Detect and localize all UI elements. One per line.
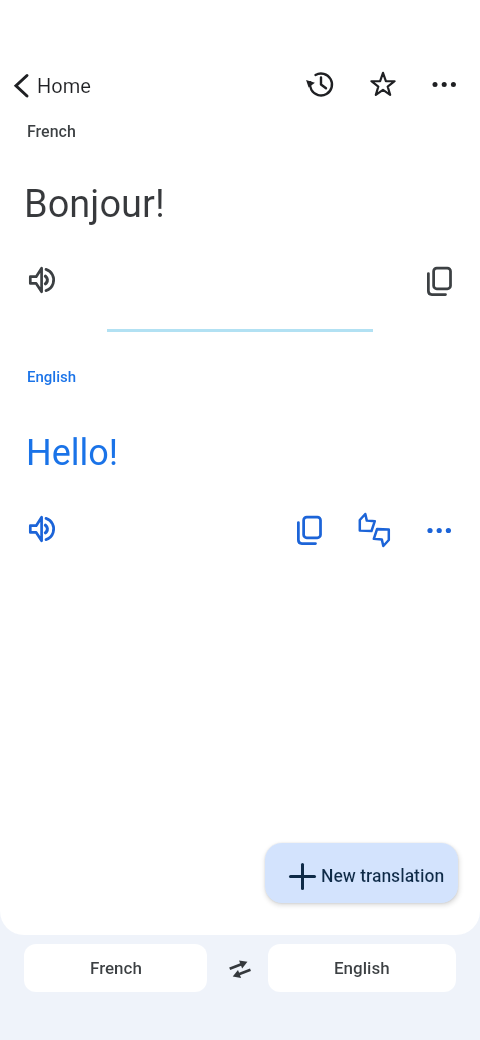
button[interactable] bbox=[423, 265, 455, 297]
button[interactable]: English bbox=[268, 944, 456, 992]
staticText: Hello! bbox=[26, 432, 119, 474]
button[interactable] bbox=[357, 511, 395, 551]
staticText: French bbox=[27, 122, 76, 141]
button[interactable] bbox=[9, 71, 39, 101]
button[interactable]: Home bbox=[37, 74, 91, 97]
button[interactable]: English bbox=[27, 368, 77, 386]
button[interactable] bbox=[24, 510, 64, 550]
button[interactable]: New translation bbox=[265, 843, 458, 903]
button[interactable]: French bbox=[24, 944, 207, 992]
button[interactable] bbox=[227, 956, 253, 982]
button[interactable] bbox=[428, 71, 460, 99]
button[interactable] bbox=[367, 69, 399, 101]
button[interactable] bbox=[24, 261, 64, 301]
staticText: English bbox=[334, 958, 390, 978]
staticText: Bonjour! bbox=[24, 182, 165, 227]
button[interactable] bbox=[293, 514, 325, 546]
staticText: New translation bbox=[321, 866, 445, 887]
button[interactable] bbox=[305, 68, 337, 100]
staticText: French bbox=[90, 958, 142, 978]
button[interactable] bbox=[423, 517, 455, 545]
